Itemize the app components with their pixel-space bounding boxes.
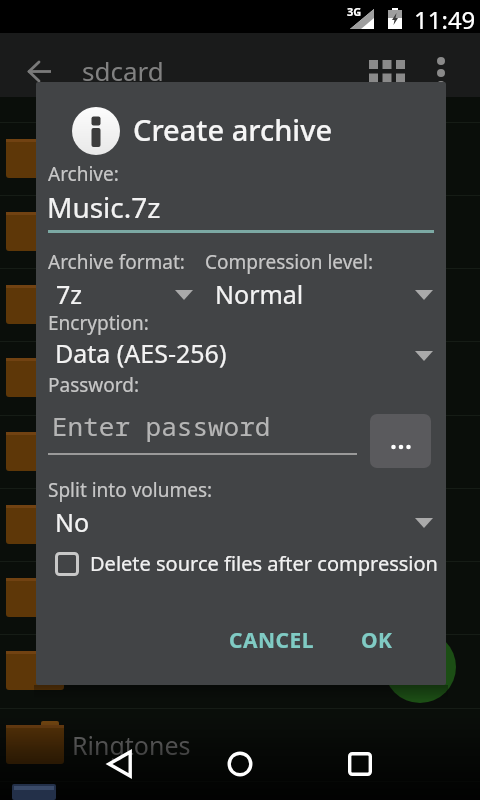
button[interactable]	[48, 544, 438, 582]
button[interactable]	[48, 504, 437, 538]
staticText: Data (AES-256)	[55, 336, 227, 370]
button[interactable]	[227, 751, 253, 777]
staticText: Ringtones	[72, 728, 191, 762]
button[interactable]	[48, 276, 198, 310]
button[interactable]	[48, 337, 437, 371]
staticText: OK	[361, 626, 393, 655]
staticText: Archive:	[48, 161, 119, 187]
button[interactable]	[370, 414, 431, 468]
staticText: Split into volumes:	[48, 477, 213, 503]
staticText: 7z	[56, 277, 83, 311]
staticText: Password:	[48, 372, 140, 398]
button[interactable]: CANCEL	[216, 614, 328, 666]
staticText: 11:49	[414, 3, 476, 36]
button[interactable]	[106, 750, 133, 778]
staticText: Normal	[215, 277, 304, 311]
staticText: Enter password	[52, 408, 271, 443]
staticText: Delete source files after compression	[90, 550, 438, 577]
staticText: Encryption:	[48, 310, 149, 336]
staticText: sdcard	[82, 53, 164, 88]
button[interactable]	[348, 752, 372, 776]
staticText: Music.7z	[47, 188, 161, 226]
button[interactable]	[384, 631, 456, 703]
button[interactable]: OK	[344, 614, 410, 666]
staticText: 3G	[347, 4, 362, 19]
button[interactable]	[28, 61, 52, 82]
button[interactable]	[436, 56, 446, 96]
staticText: Compression level:	[205, 249, 374, 275]
staticText: Archive format:	[48, 249, 185, 275]
staticText: Create archive	[133, 110, 333, 149]
button[interactable]	[369, 60, 407, 98]
button[interactable]	[205, 276, 437, 310]
staticText: No	[55, 505, 90, 539]
staticText: CANCEL	[229, 626, 315, 655]
